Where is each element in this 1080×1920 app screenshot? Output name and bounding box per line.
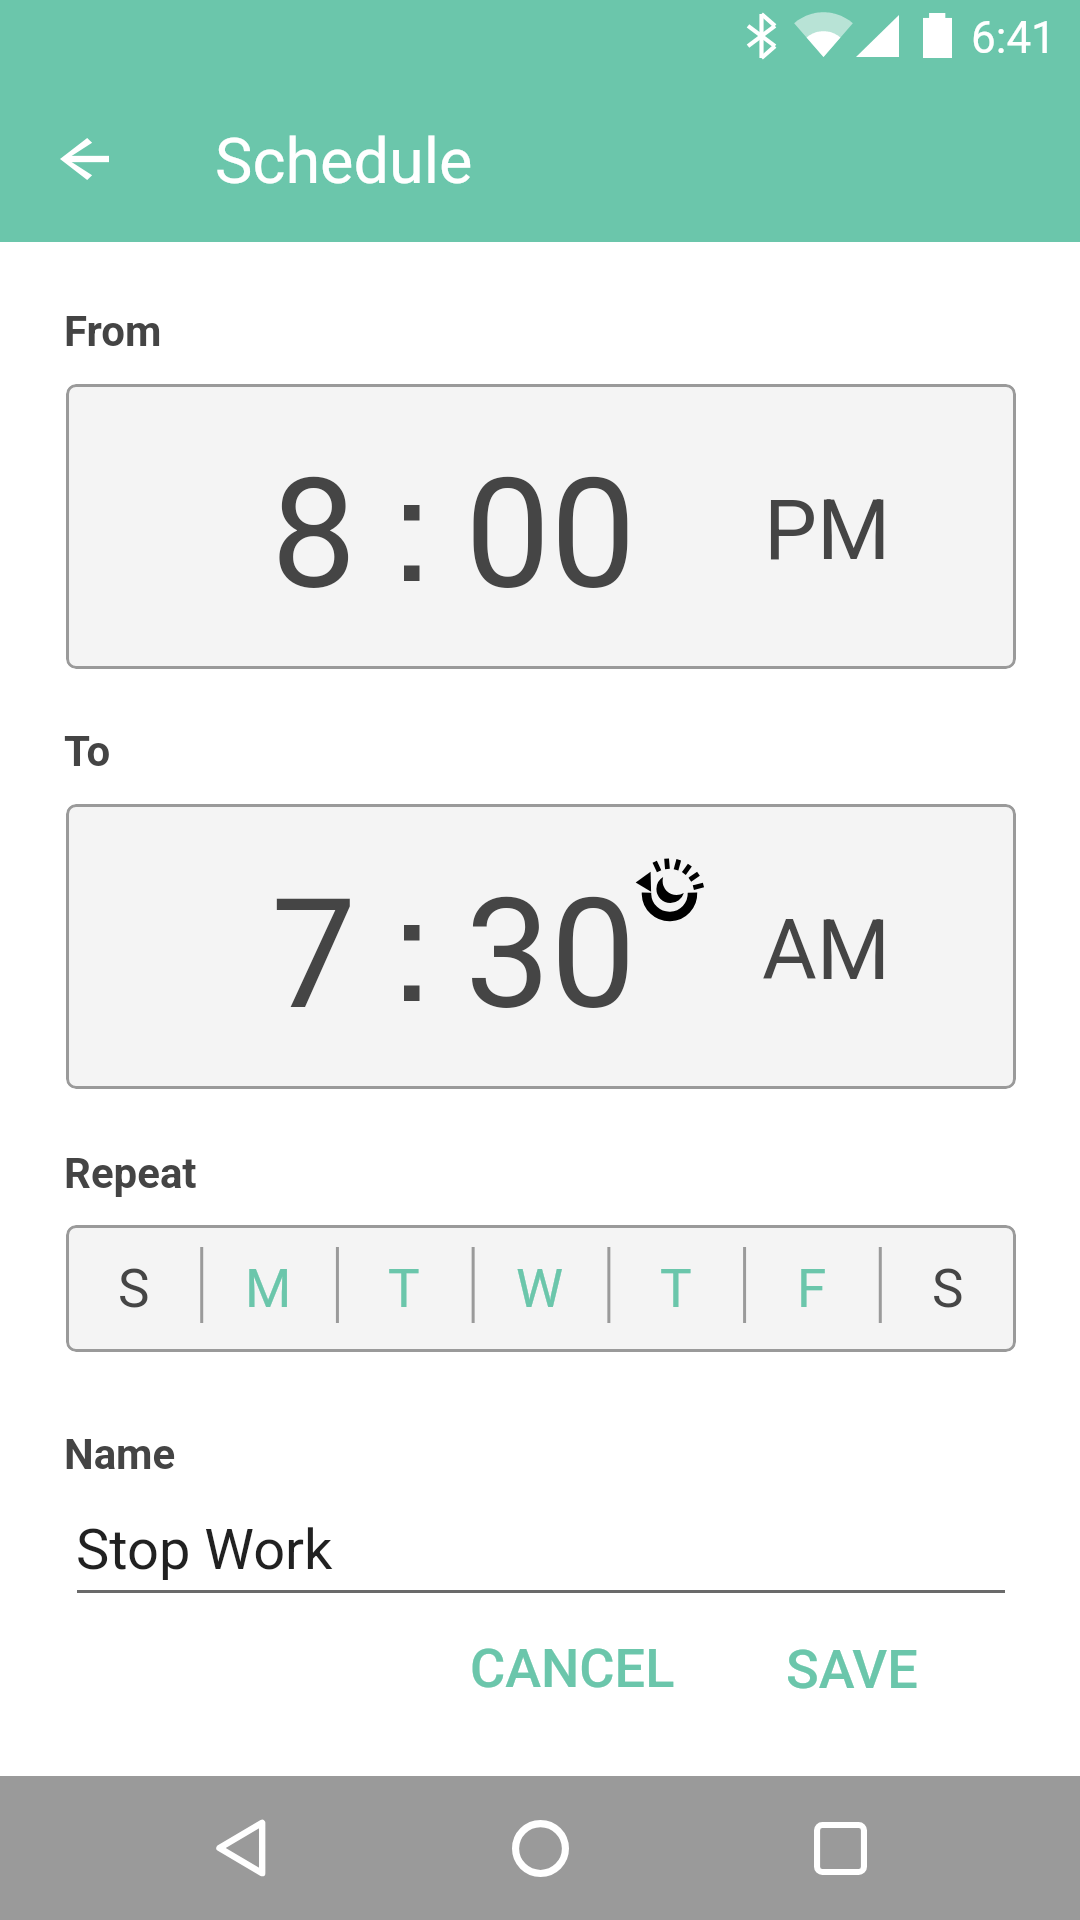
button[interactable]: Home <box>450 1776 630 1920</box>
button[interactable]: M <box>201 1225 336 1352</box>
staticText: SAVE <box>786 1638 918 1701</box>
button[interactable]: Navigate up <box>36 111 132 207</box>
staticText: From <box>64 307 162 356</box>
button[interactable]: 8 <box>66 384 1016 669</box>
button[interactable]: Stop Work <box>76 1505 1006 1593</box>
staticText: S <box>932 1258 964 1320</box>
staticText: 6:41 <box>971 12 1056 64</box>
staticText: CANCEL <box>470 1637 675 1700</box>
staticText: 8 <box>271 446 357 624</box>
button[interactable]: W <box>472 1225 608 1352</box>
staticText: Repeat <box>64 1149 197 1198</box>
staticText: 7 <box>271 866 357 1044</box>
button[interactable]: SAVE <box>752 1621 952 1717</box>
staticText: To <box>64 727 111 776</box>
staticText: Name <box>64 1430 176 1479</box>
staticText: AM <box>762 901 891 991</box>
button[interactable]: CANCEL <box>436 1620 708 1716</box>
button[interactable]: T <box>336 1225 472 1352</box>
staticText: F <box>797 1258 827 1320</box>
button[interactable]: F <box>744 1225 880 1352</box>
staticText: S <box>118 1258 150 1320</box>
button[interactable]: S <box>880 1225 1016 1352</box>
button[interactable]: S <box>66 1225 201 1352</box>
button[interactable]: 7 <box>66 804 1016 1089</box>
button[interactable]: T <box>608 1225 744 1352</box>
staticText: 00 <box>465 446 636 624</box>
staticText: W <box>516 1258 564 1320</box>
staticText: M <box>245 1258 292 1320</box>
staticText: PM <box>764 481 891 571</box>
staticText: T <box>388 1258 420 1320</box>
button[interactable]: Back <box>150 1776 330 1920</box>
staticText: 30 <box>465 866 636 1044</box>
staticText: T <box>660 1258 692 1320</box>
button[interactable]: Recent apps <box>750 1776 930 1920</box>
staticText: Stop Work <box>76 1517 333 1583</box>
staticText: Schedule <box>215 125 473 199</box>
